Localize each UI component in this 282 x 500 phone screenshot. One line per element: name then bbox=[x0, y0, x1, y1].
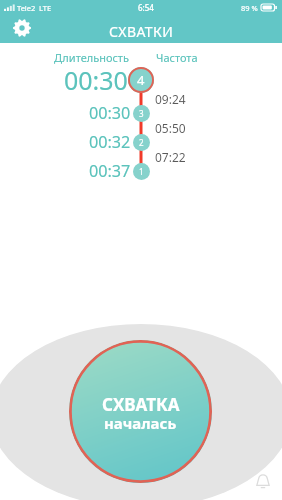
staticText: 89 % bbox=[241, 3, 258, 13]
staticText: LTE bbox=[39, 3, 52, 13]
staticText: 6:54 bbox=[138, 2, 154, 13]
staticText: СХВАТКА bbox=[102, 393, 180, 416]
button[interactable]: 2 bbox=[133, 134, 150, 151]
button[interactable]: 3 bbox=[133, 105, 150, 122]
button[interactable]: СХВАТКА bbox=[69, 340, 212, 483]
staticText: 3 bbox=[139, 108, 144, 119]
staticText: 2 bbox=[139, 137, 144, 148]
staticText: 00:30 bbox=[64, 63, 128, 97]
staticText: СХВАТКИ bbox=[109, 22, 174, 41]
staticText: 4 bbox=[137, 71, 145, 89]
staticText: 1 bbox=[139, 166, 144, 177]
button[interactable]: 4 bbox=[128, 67, 154, 93]
staticText: 09:24 bbox=[155, 91, 186, 107]
staticText: 00:37 bbox=[89, 160, 131, 182]
button[interactable]: 1 bbox=[133, 163, 150, 180]
button[interactable]: Notifications bbox=[252, 470, 274, 492]
staticText: 05:50 bbox=[155, 120, 186, 136]
staticText: 00:32 bbox=[89, 131, 131, 153]
staticText: Длительность bbox=[54, 50, 129, 65]
staticText: началась bbox=[104, 413, 177, 433]
staticText: 00:30 bbox=[89, 102, 131, 124]
button[interactable]: Settings bbox=[9, 15, 35, 41]
staticText: Частота bbox=[156, 50, 198, 65]
staticText: 07:22 bbox=[155, 149, 186, 165]
staticText: Tele2 bbox=[17, 3, 36, 13]
